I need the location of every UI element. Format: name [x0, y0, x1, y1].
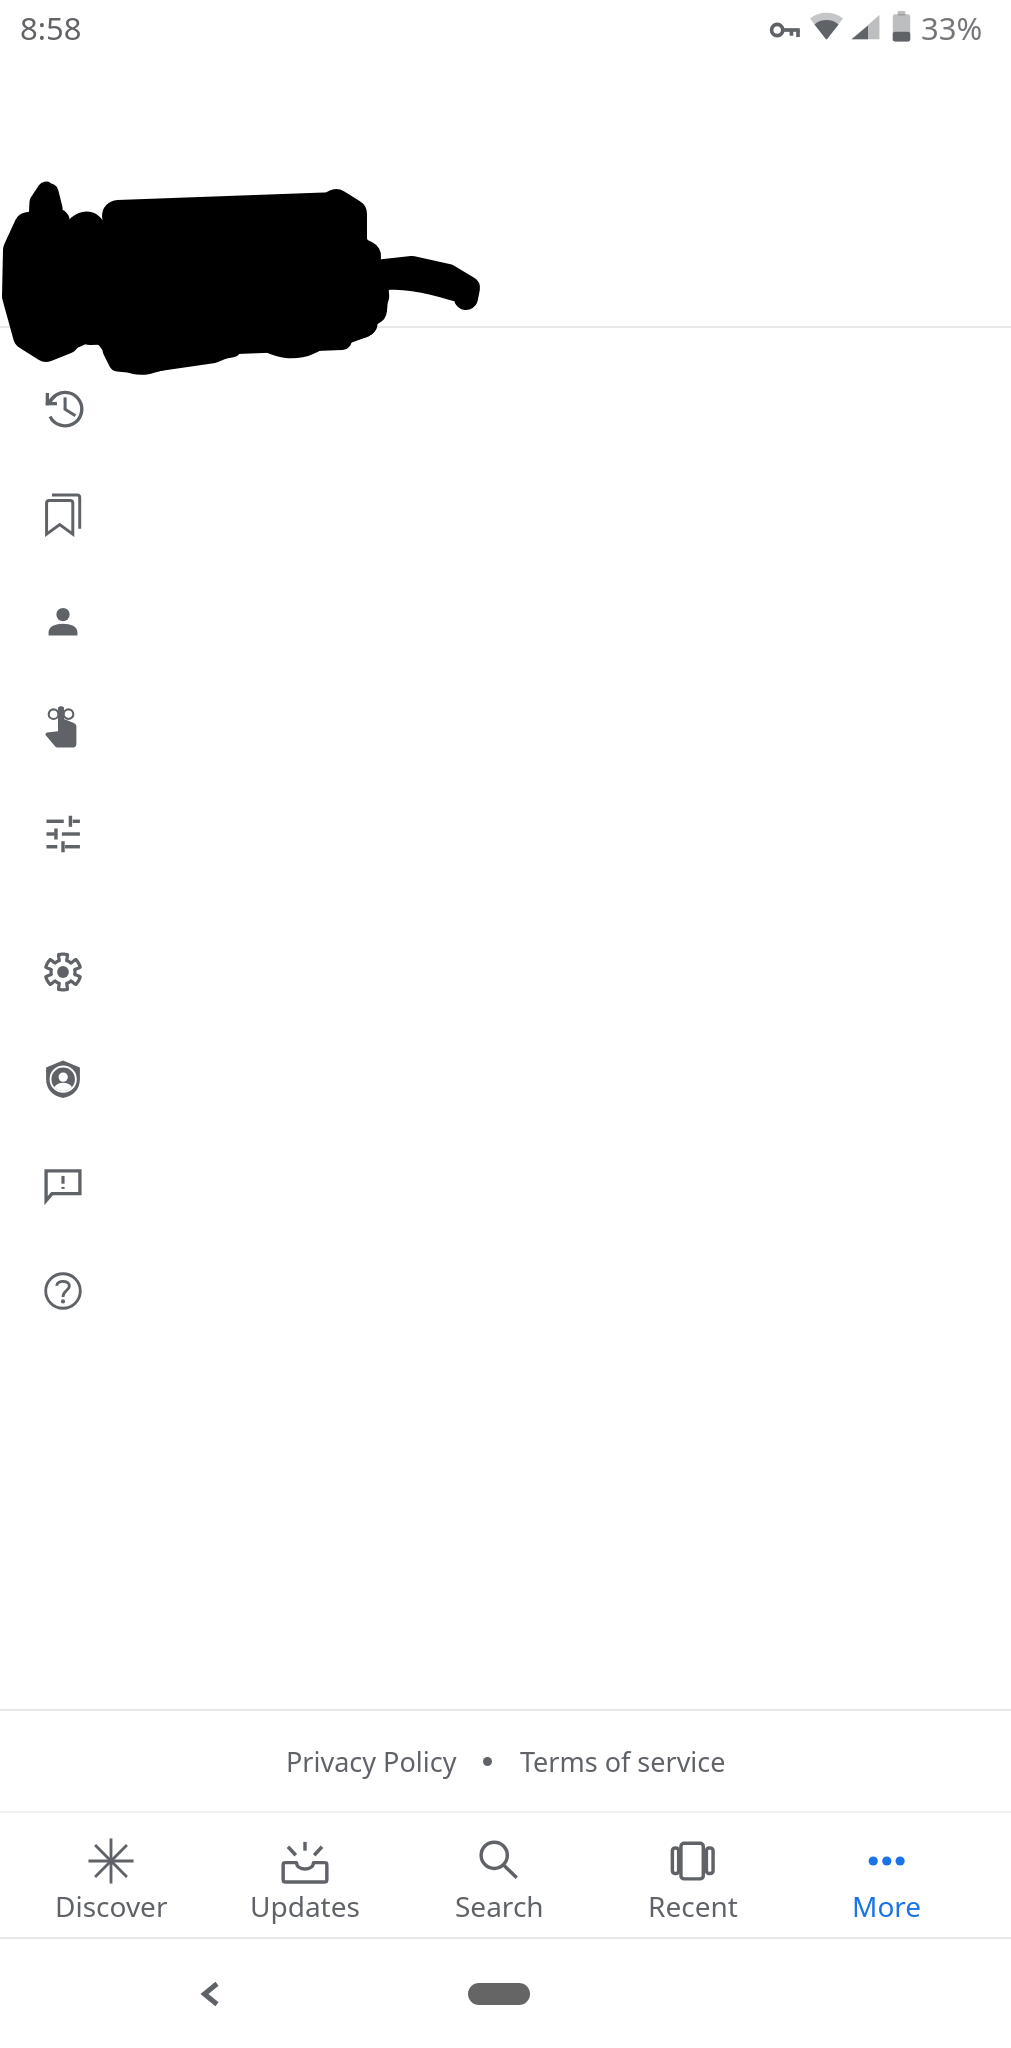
button[interactable]: Updates	[208, 1813, 402, 1937]
other: Back	[196, 1979, 226, 2009]
button[interactable]: History	[0, 353, 1011, 461]
staticText: Discover	[55, 1887, 168, 1925]
button[interactable]: Settings	[0, 918, 1011, 1026]
staticText: 8:58	[20, 7, 82, 49]
button[interactable]: Your profile	[0, 567, 1011, 675]
staticText: Recent	[648, 1887, 738, 1925]
staticText: More	[852, 1887, 922, 1925]
button[interactable]: More	[790, 1813, 984, 1937]
button[interactable]: Recent	[596, 1813, 790, 1937]
staticText: Search	[455, 1887, 544, 1925]
button[interactable]: Privacy Policy	[280, 1733, 463, 1790]
button[interactable]: Interests	[0, 673, 1011, 781]
button[interactable]: Search	[402, 1813, 596, 1937]
button[interactable]: Terms of service	[514, 1733, 732, 1790]
staticText: Updates	[250, 1887, 360, 1925]
button[interactable]: Customise	[0, 780, 1011, 888]
button[interactable]: Send feedback	[0, 1132, 1011, 1240]
button[interactable]: Bookmarks	[0, 460, 1011, 568]
staticText: 33%	[921, 7, 983, 49]
button[interactable]: Privacy guide	[0, 1025, 1011, 1133]
button[interactable]: Help	[0, 1237, 1011, 1345]
button[interactable]: Discover	[14, 1813, 208, 1937]
button[interactable]: Google Account	[0, 60, 1011, 326]
